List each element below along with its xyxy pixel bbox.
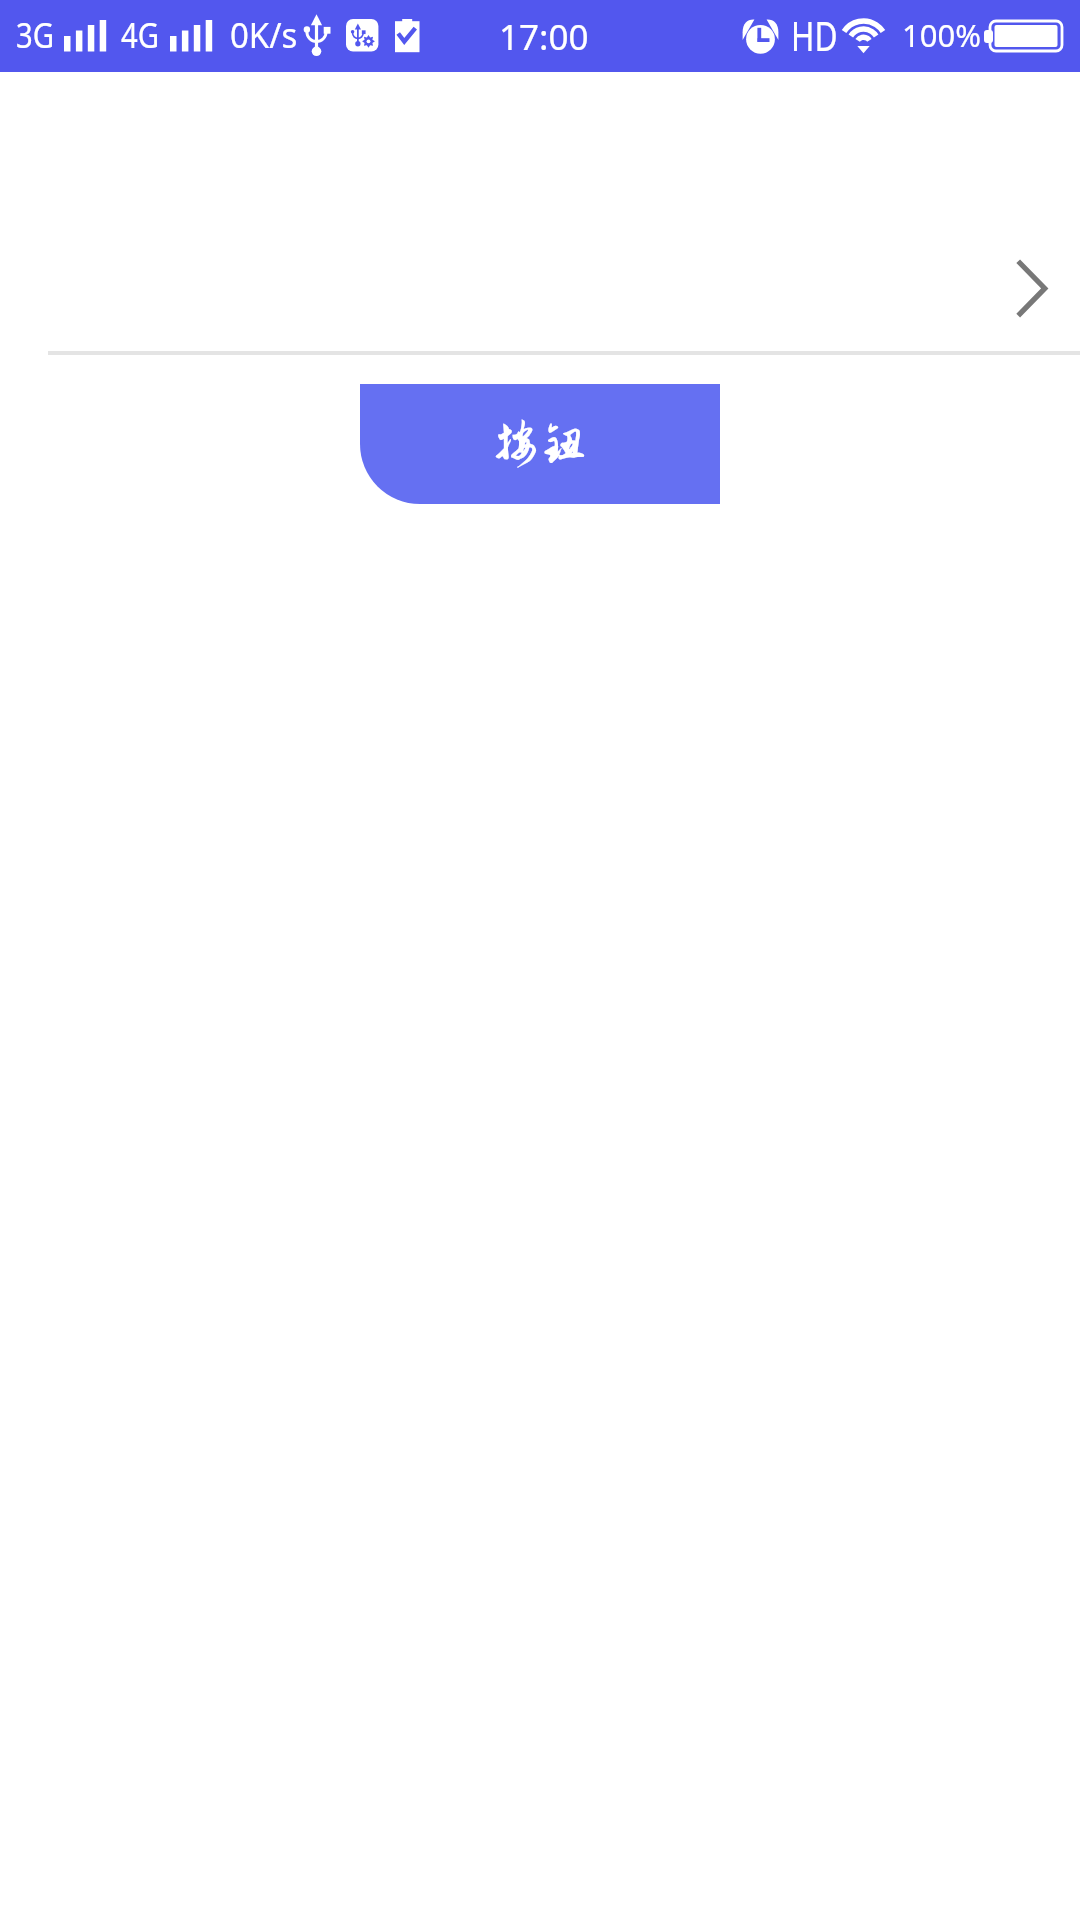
staticText: HD bbox=[791, 8, 838, 62]
staticText: 100% bbox=[902, 14, 981, 56]
staticText: 0K/s bbox=[230, 12, 298, 58]
staticText: 17:00 bbox=[499, 13, 589, 61]
staticText: 4G bbox=[121, 12, 160, 58]
staticText: 3G bbox=[16, 12, 55, 58]
button[interactable]: Open bbox=[1015, 258, 1053, 320]
staticText: 按钮 bbox=[491, 417, 589, 471]
button[interactable]: 按钮 bbox=[360, 384, 720, 504]
button[interactable]: Open bbox=[0, 72, 1080, 355]
